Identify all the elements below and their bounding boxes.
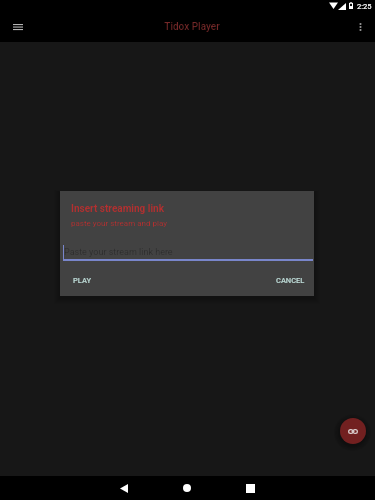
button[interactable]: Recent apps xyxy=(238,476,262,500)
staticText: paste your stream and play xyxy=(71,219,167,228)
staticText: Insert streaming link xyxy=(71,203,165,215)
staticText: PLAY xyxy=(73,276,92,285)
button[interactable]: Open navigation menu xyxy=(5,14,31,40)
button[interactable]: More options xyxy=(347,14,373,40)
button[interactable]: Back xyxy=(112,476,136,500)
staticText: CANCEL xyxy=(276,276,305,285)
staticText: Paste your stream link here xyxy=(64,247,173,258)
button[interactable]: CANCEL xyxy=(271,269,309,291)
staticText: Tidox Player xyxy=(164,21,220,33)
button[interactable]: Home xyxy=(175,476,199,500)
staticText: 2:25 xyxy=(357,2,372,11)
button[interactable]: PLAY xyxy=(67,269,97,291)
button[interactable]: Insert streaming link xyxy=(340,418,366,444)
